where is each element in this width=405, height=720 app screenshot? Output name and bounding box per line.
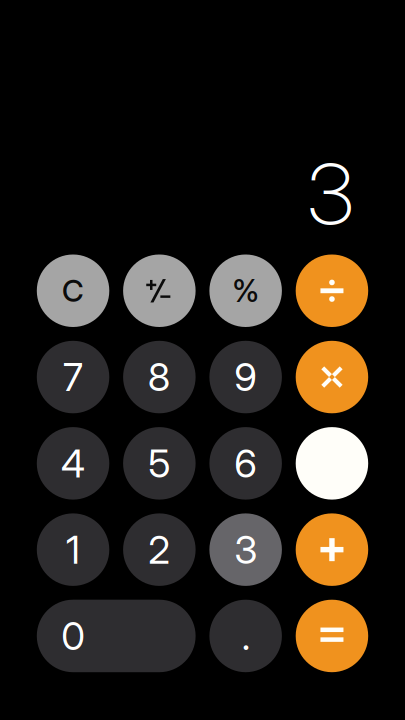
button[interactable]: Equals <box>296 600 368 672</box>
button[interactable]: 0 <box>37 600 196 672</box>
button[interactable]: Subtract <box>296 427 368 500</box>
button[interactable]: 1 <box>37 513 109 586</box>
staticText: 3 <box>234 526 257 573</box>
button[interactable]: C <box>37 254 109 327</box>
staticText: 6 <box>234 440 257 487</box>
button[interactable]: % <box>209 254 282 327</box>
button[interactable]: Multiply <box>296 341 368 413</box>
staticText: 8 <box>148 354 171 400</box>
staticText: 2 <box>148 526 170 573</box>
staticText: . <box>242 613 250 659</box>
button[interactable]: Add <box>296 513 368 586</box>
button[interactable]: Divide <box>296 254 368 327</box>
button[interactable]: 6 <box>209 427 282 500</box>
button[interactable]: 8 <box>123 341 196 413</box>
button[interactable]: 2 <box>123 513 196 586</box>
button[interactable]: 3 <box>209 513 282 586</box>
button[interactable]: . <box>209 600 282 672</box>
staticText: C <box>62 273 84 309</box>
staticText: 0 <box>61 613 85 659</box>
button[interactable]: 5 <box>123 427 196 500</box>
button[interactable]: 7 <box>37 341 109 413</box>
staticText: % <box>232 272 259 309</box>
button[interactable]: 4 <box>37 427 109 500</box>
staticText: 9 <box>234 354 257 400</box>
staticText: 5 <box>148 440 170 487</box>
staticText: 4 <box>61 440 85 487</box>
staticText: 7 <box>63 354 83 400</box>
button[interactable]: 9 <box>209 341 282 413</box>
staticText: 3 <box>306 145 355 242</box>
button[interactable]: Plus Minus <box>123 254 196 327</box>
staticText: 1 <box>66 526 80 573</box>
